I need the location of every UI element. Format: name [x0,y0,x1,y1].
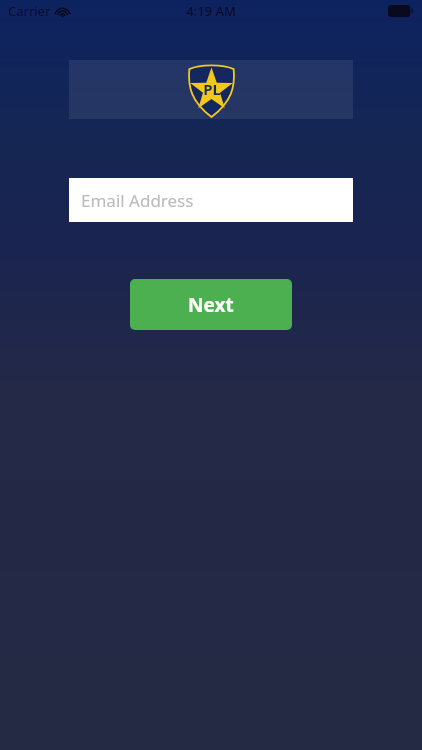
staticText: PL [203,79,221,99]
button[interactable]: Next [130,279,292,330]
staticText: Carrier [8,2,51,20]
staticText: Email Address [81,189,194,212]
staticText: Next [188,292,234,318]
button[interactable]: Email Address [69,178,353,222]
staticText: 4:19 AM [186,2,236,20]
